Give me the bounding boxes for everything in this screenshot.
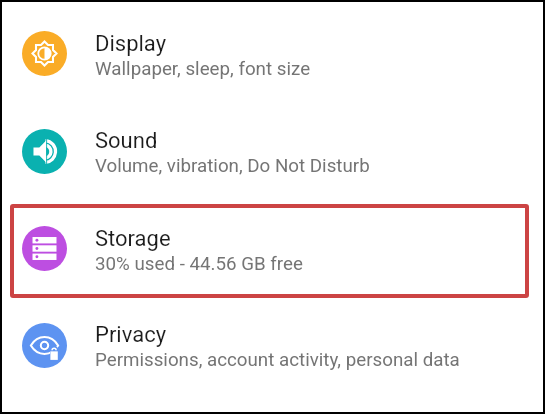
- button[interactable]: Sound settings: [0, 103, 545, 200]
- staticText: Wallpaper, sleep, font size: [95, 58, 311, 80]
- staticText: Storage: [95, 226, 171, 252]
- staticText: 30% used - 44.56 GB free: [95, 253, 303, 275]
- button[interactable]: Storage settings: [0, 200, 545, 297]
- staticText: Volume, vibration, Do Not Disturb: [95, 155, 370, 177]
- button[interactable]: Privacy settings: [0, 297, 545, 394]
- staticText: Sound: [95, 128, 158, 154]
- staticText: Privacy: [95, 322, 167, 348]
- staticText: Display: [95, 31, 167, 57]
- button[interactable]: Display settings: [0, 5, 545, 102]
- staticText: Permissions, account activity, personal …: [95, 349, 460, 371]
